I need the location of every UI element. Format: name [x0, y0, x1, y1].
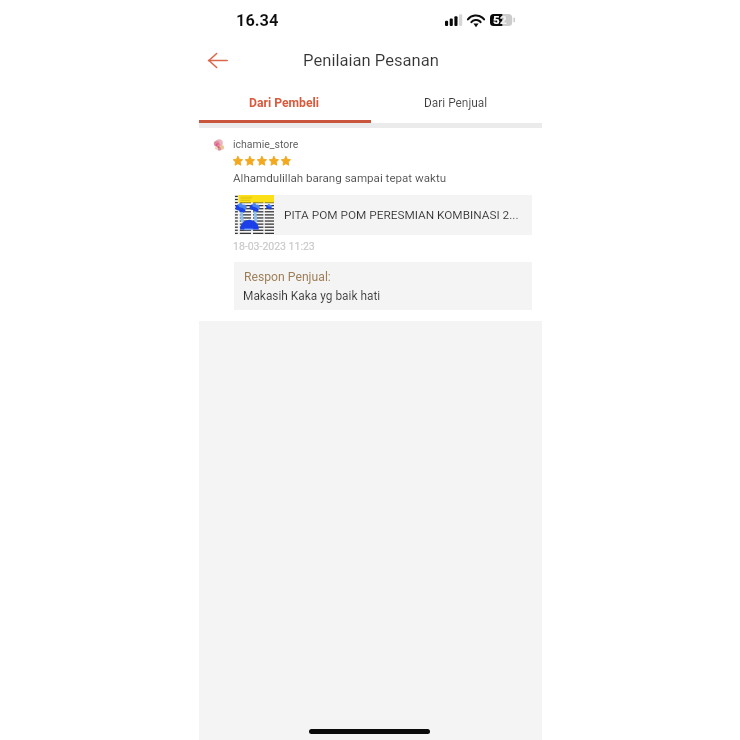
staticText: Alhamdulillah barang sampai tepat waktu	[233, 171, 447, 185]
staticText: Penilaian Pesanan	[303, 51, 439, 70]
button[interactable]: Back	[199, 43, 235, 77]
staticText: Dari Penjual	[424, 96, 488, 110]
button[interactable]: Dari Pembeli	[199, 92, 370, 114]
staticText: Dari Pembeli	[249, 96, 320, 110]
staticText: 18-03-2023 11:23	[233, 240, 315, 252]
staticText: Respon Penjual:	[244, 270, 331, 284]
staticText: Makasih Kaka yg baik hati	[243, 289, 381, 303]
button[interactable]: ichamie_store	[208, 131, 287, 151]
button[interactable]: PITA POM POM PERESMIAN KOMBINASI 2...	[234, 195, 532, 235]
staticText: ichamie_store	[233, 138, 299, 150]
button[interactable]: Dari Penjual	[370, 92, 542, 114]
staticText: 5	[493, 13, 500, 25]
staticText: 2	[500, 13, 507, 25]
staticText: PITA POM POM PERESMIAN KOMBINASI 2...	[284, 208, 519, 222]
staticText: 16.34	[236, 11, 279, 30]
